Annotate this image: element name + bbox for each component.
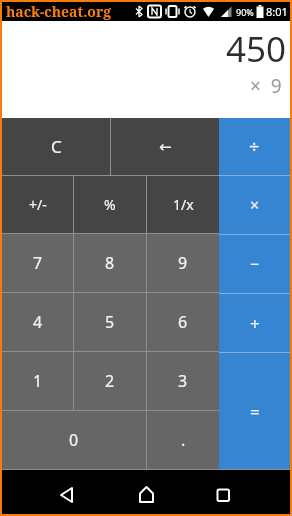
staticText: 0 [69, 429, 79, 451]
staticText: 6 [178, 311, 188, 333]
staticText: × [250, 194, 260, 216]
staticText: = [250, 400, 260, 423]
staticText: 4 [33, 311, 43, 333]
staticText: ← [159, 138, 172, 155]
staticText: 3 [178, 370, 188, 392]
button[interactable]: 1/x [147, 176, 219, 233]
button[interactable]: 3 [147, 352, 219, 410]
staticText: +/- [29, 195, 47, 214]
button[interactable]: 7 [2, 234, 73, 292]
button[interactable]: % [74, 176, 146, 233]
button[interactable]: C [2, 118, 110, 175]
button[interactable]: ← [111, 118, 219, 175]
staticText: 450 [226, 25, 287, 73]
staticText: 8:01 [266, 4, 288, 19]
staticText: × 9 [250, 73, 282, 99]
staticText: 5 [105, 311, 115, 333]
button[interactable] [138, 486, 155, 503]
button[interactable]: ÷ [219, 118, 290, 175]
button[interactable]: 1 [2, 352, 73, 410]
staticText: 90% [236, 6, 254, 18]
staticText: 8 [105, 252, 115, 274]
staticText: 1/x [173, 195, 194, 214]
staticText: C [51, 135, 62, 158]
staticText: . [181, 429, 186, 451]
button[interactable] [216, 488, 231, 503]
button[interactable] [59, 487, 75, 503]
button[interactable]: × [219, 176, 290, 234]
staticText: 2 [105, 370, 115, 392]
staticText: % [104, 195, 116, 214]
button[interactable]: 9 [147, 234, 219, 292]
button[interactable]: − [219, 235, 290, 293]
staticText: 7 [33, 252, 43, 274]
button[interactable]: 6 [147, 293, 219, 351]
button[interactable]: 5 [74, 293, 146, 351]
button[interactable]: . [147, 411, 219, 469]
staticText: + [250, 312, 260, 335]
button[interactable]: +/- [2, 176, 73, 233]
staticText: 9 [178, 252, 188, 274]
button[interactable]: 4 [2, 293, 73, 351]
button[interactable]: 0 [2, 411, 146, 469]
staticText: hack-cheat.org [6, 2, 112, 21]
button[interactable]: 8 [74, 234, 146, 292]
staticText: 1 [33, 370, 43, 392]
button[interactable]: + [219, 294, 290, 352]
staticText: ÷ [249, 134, 260, 159]
staticText: − [250, 253, 260, 275]
button[interactable]: = [219, 353, 290, 469]
button[interactable]: 2 [74, 352, 146, 410]
